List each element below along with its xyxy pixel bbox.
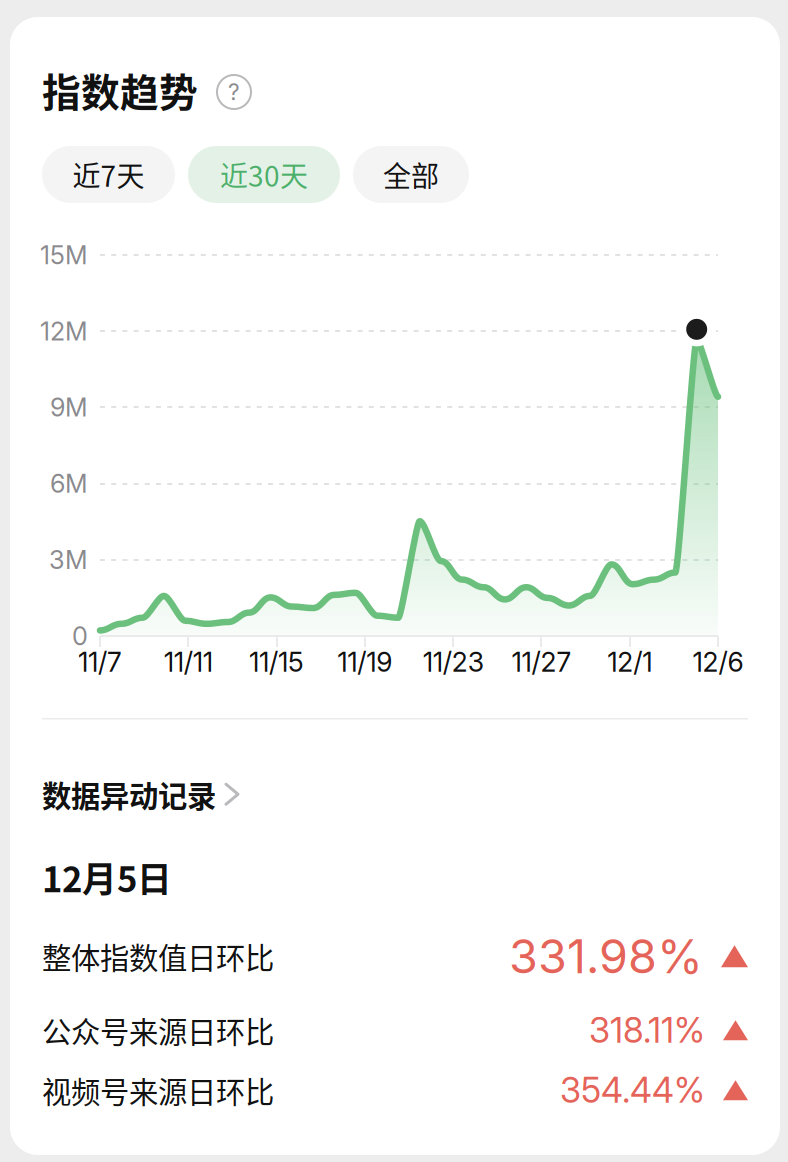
staticText: 15M bbox=[40, 240, 88, 270]
staticText: 9M bbox=[50, 392, 88, 423]
staticText: 近7天 bbox=[72, 154, 144, 195]
staticText: 11/11 bbox=[164, 646, 213, 678]
button[interactable]: 全部 bbox=[353, 146, 469, 203]
staticText: 12月5日 bbox=[42, 852, 172, 902]
staticText: 全部 bbox=[383, 154, 439, 195]
staticText: 12/6 bbox=[692, 646, 743, 678]
staticText: 整体指数值日环比 bbox=[42, 935, 274, 977]
button[interactable]: 近7天 bbox=[42, 146, 175, 203]
button[interactable]: 帮助 bbox=[217, 73, 251, 107]
staticText: 11/23 bbox=[423, 646, 484, 678]
staticText: 331.98% bbox=[509, 928, 703, 984]
button[interactable]: 近30天 bbox=[188, 146, 340, 203]
staticText: 3M bbox=[49, 544, 88, 575]
staticText: 12/1 bbox=[607, 646, 652, 678]
staticText: 11/7 bbox=[78, 646, 122, 678]
staticText: 354.44% bbox=[560, 1069, 705, 1111]
staticText: 0 bbox=[72, 621, 88, 651]
button[interactable]: 数据异动记录 bbox=[42, 773, 238, 815]
staticText: 11/15 bbox=[249, 646, 304, 678]
staticText: 6M bbox=[50, 468, 88, 499]
staticText: 12M bbox=[40, 316, 88, 347]
staticText: 近30天 bbox=[220, 154, 308, 195]
staticText: 指数趋势 bbox=[42, 62, 198, 118]
staticText: 视频号来源日环比 bbox=[42, 1069, 274, 1111]
staticText: 公众号来源日环比 bbox=[42, 1009, 274, 1051]
staticText: 11/27 bbox=[511, 646, 571, 678]
staticText: 318.11% bbox=[589, 1009, 705, 1051]
staticText: 11/19 bbox=[337, 646, 392, 678]
staticText: ? bbox=[228, 78, 240, 106]
staticText: 数据异动记录 bbox=[42, 773, 216, 815]
